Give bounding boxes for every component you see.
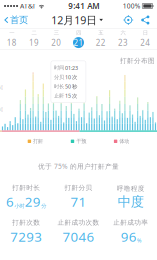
staticText: 中度 (118, 193, 144, 210)
staticText: 60 (0, 84, 3, 91)
staticText: 24 (140, 37, 150, 48)
button[interactable]: Locate (123, 13, 133, 27)
staticText: 时长 (54, 83, 64, 90)
staticText: 22 (96, 37, 106, 48)
staticText: 分 (41, 203, 46, 209)
staticText: 23 (118, 37, 128, 48)
button[interactable]: 日 (134, 29, 156, 48)
staticText: 一 (9, 29, 14, 36)
staticText: 18 (7, 37, 17, 48)
staticText: 50 秒 (65, 83, 77, 90)
staticText: 日 (143, 29, 148, 36)
staticText: 01:23 (65, 64, 78, 71)
staticText: 30 (0, 106, 3, 113)
staticText: 小时 (14, 203, 24, 209)
staticText: 100% (123, 2, 141, 10)
staticText: % (137, 237, 141, 244)
staticText: 干预 (76, 138, 86, 145)
button[interactable]: 三 (45, 29, 67, 48)
staticText: 20 (51, 37, 61, 48)
staticText: 止鼾成功次数 (57, 218, 99, 227)
staticText: 五 (98, 29, 103, 36)
staticText: 7293 (10, 228, 42, 245)
staticText: 三 (54, 29, 59, 36)
staticText: 优于 75% 的用户打鼾产量 (38, 162, 119, 171)
staticText: 96 (121, 228, 137, 245)
button[interactable]: 首页 (0, 11, 31, 29)
button[interactable]: Share (140, 13, 150, 27)
staticText: 止鼾 (54, 92, 64, 99)
staticText: 12月19日 (51, 13, 97, 27)
staticText: 首页 (10, 14, 28, 26)
staticText: 体动 (119, 138, 129, 145)
staticText: 15 次 (65, 92, 77, 99)
button[interactable]: 六 (112, 29, 134, 48)
staticText: 6 (6, 193, 14, 210)
staticText: 分贝 (54, 74, 64, 80)
staticText: 7046 (62, 228, 94, 245)
staticText: 9:41 AM (68, 1, 99, 11)
staticText: 29 (25, 193, 41, 210)
staticText: 21 (73, 37, 83, 48)
staticText: 二 (31, 29, 36, 36)
staticText: 打鼾分布图 (120, 57, 155, 65)
staticText: 打鼾 (33, 138, 43, 145)
button[interactable]: 二 (23, 29, 45, 48)
staticText: 止鼾成功率 (113, 218, 148, 227)
staticText: 71 (70, 193, 86, 210)
staticText: 呼噜程度 (117, 184, 145, 192)
button[interactable]: 四 (67, 29, 90, 48)
staticText: 四 (76, 29, 81, 36)
staticText: 10 次 (65, 74, 77, 81)
button[interactable]: 12月19日 (51, 10, 103, 30)
staticText: 打鼾分贝 (64, 184, 92, 192)
staticText: 六 (121, 29, 126, 36)
staticText: 打鼾次数 (12, 218, 40, 227)
staticText: 打鼾时长 (12, 184, 40, 192)
staticText: 19 (29, 37, 39, 48)
button[interactable]: 一 (0, 29, 23, 48)
staticText: AT&T (18, 2, 36, 10)
staticText: 时间 (54, 65, 64, 71)
button[interactable]: 五 (90, 29, 112, 48)
